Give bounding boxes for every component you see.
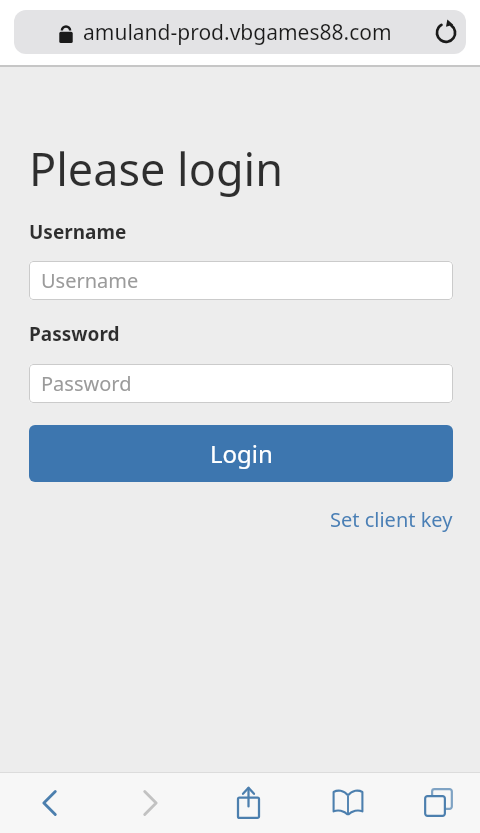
button[interactable]: Login (29, 425, 453, 482)
button[interactable]: Password (29, 364, 453, 403)
staticText: Password (29, 321, 120, 347)
button[interactable]: Back (0, 772, 100, 833)
staticText: Username (41, 267, 139, 294)
button[interactable]: Username (29, 261, 453, 300)
button[interactable]: Bookmarks (298, 772, 397, 833)
button[interactable]: Set client key (330, 506, 453, 533)
button[interactable]: Reload (426, 12, 466, 52)
button[interactable]: Forward (100, 772, 199, 833)
staticText: Password (41, 370, 132, 397)
button[interactable]: Tabs (397, 772, 480, 833)
staticText: amuland-prod.vbgames88.com (83, 18, 392, 47)
button[interactable]: Share (199, 772, 298, 833)
button[interactable]: amuland-prod.vbgames88.com (14, 10, 466, 54)
staticText: Please login (29, 138, 284, 199)
staticText: Username (29, 219, 127, 245)
staticText: Login (210, 437, 273, 470)
staticText: Set client key (330, 506, 453, 533)
